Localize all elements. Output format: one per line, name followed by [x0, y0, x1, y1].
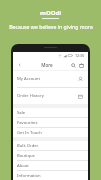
button[interactable]: Favourites [13, 118, 88, 127]
button[interactable]: Get In Touch [13, 128, 88, 137]
staticText: mOOdi [40, 9, 61, 17]
staticText: My Account [17, 76, 77, 82]
button[interactable]: Order History [13, 88, 88, 104]
button[interactable]: Sale [13, 108, 88, 117]
button[interactable]: About [13, 161, 88, 170]
button[interactable]: My Account [13, 71, 88, 87]
staticText: Sale [17, 110, 26, 116]
button[interactable]: Search [69, 61, 77, 69]
staticText: 12:30 [75, 53, 85, 58]
button[interactable]: Boutique [13, 151, 88, 160]
button[interactable]: Information [13, 171, 88, 180]
staticText: Favourites [17, 120, 38, 126]
staticText: Order History [17, 93, 77, 99]
staticText: Because we believe in giving more [9, 23, 93, 30]
staticText: About [17, 163, 29, 169]
button[interactable]: Bulk Order [13, 141, 88, 150]
button[interactable]: Bag [77, 61, 85, 69]
button[interactable]: Back [16, 61, 24, 69]
staticText: Information [17, 173, 41, 179]
staticText: Bulk Order [17, 143, 39, 149]
staticText: Boutique [17, 153, 35, 159]
staticText: Get In Touch [17, 130, 42, 136]
staticText: More [41, 62, 53, 68]
